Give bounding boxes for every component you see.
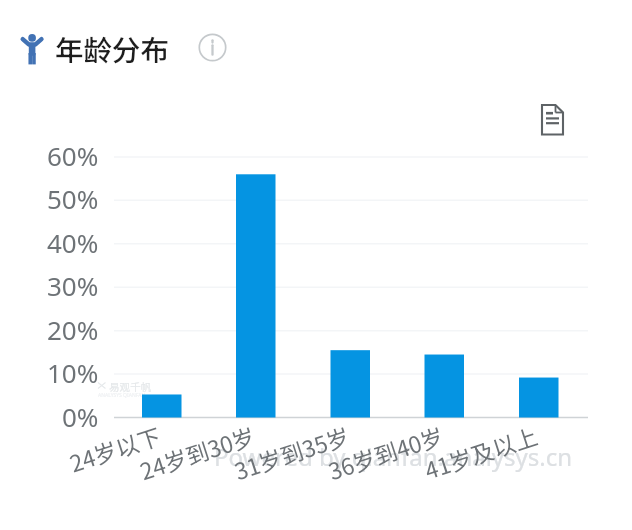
button[interactable]: Info about age distribution (196, 31, 229, 64)
button[interactable]: 31岁到35岁 15.5% (331, 350, 371, 417)
button[interactable]: 36岁到40岁 14.5% (425, 355, 465, 418)
button[interactable]: 41岁及以上 9.2% (519, 378, 559, 418)
button[interactable]: Report (536, 100, 570, 134)
button[interactable]: 年龄分布 (14, 24, 180, 70)
button[interactable]: 24岁以下 5.3% (142, 394, 182, 417)
button[interactable]: 24岁到30岁 56.0% (236, 174, 276, 417)
